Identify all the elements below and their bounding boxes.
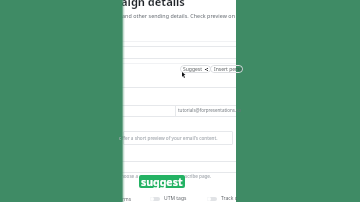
- staticText: scribe page.: [185, 173, 212, 179]
- staticText: Suggest: [183, 66, 203, 73]
- other: Track c: [207, 197, 217, 201]
- button[interactable]: Insert personalisation: [210, 65, 243, 73]
- staticText: and other sending details. Check preview…: [122, 12, 236, 19]
- button[interactable]: suggest: [139, 175, 185, 188]
- staticText: tutorials@forpresentations.co: [178, 107, 242, 113]
- button[interactable]: Suggest: [180, 65, 211, 73]
- staticText: hoose a: [121, 173, 138, 179]
- staticText: offer a short preview of your email's co…: [119, 135, 218, 141]
- staticText: suggest: [141, 175, 183, 188]
- staticText: UTM tags: [164, 195, 187, 202]
- button[interactable]: Track c: [207, 195, 238, 202]
- staticText: Track c: [221, 195, 238, 202]
- other: Share: [205, 68, 208, 71]
- other: UTM tags: [150, 197, 160, 201]
- staticText: rms: [122, 196, 132, 202]
- button[interactable]: [123, 131, 233, 145]
- button[interactable]: UTM tags: [150, 195, 187, 202]
- staticText: Insert personalisation: [214, 66, 243, 73]
- staticText: aign details: [121, 0, 185, 9]
